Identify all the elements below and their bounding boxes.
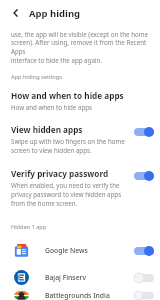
staticText: interface to hide the app again.: [11, 56, 102, 64]
button[interactable]: How and when to hide apps: [0, 88, 160, 113]
button[interactable]: Google News: [0, 237, 160, 264]
button[interactable]: Toggle on: [134, 246, 154, 256]
staticText: Verify privacy password: [11, 168, 109, 179]
staticText: Google News: [45, 246, 134, 255]
button[interactable]: Toggle off: [134, 291, 154, 300]
staticText: App hiding: [29, 7, 81, 20]
button[interactable]: Toggle off: [134, 273, 154, 283]
staticText: Bajaj Finserv: [45, 273, 134, 282]
button[interactable]: Toggle on: [134, 171, 154, 181]
staticText: App hiding settings: [11, 73, 62, 81]
staticText: When enabled, you need to verify the pri…: [11, 181, 122, 208]
staticText: View hidden apps: [11, 124, 83, 135]
staticText: Swipe up with two fingers on the home sc…: [11, 137, 125, 155]
button[interactable]: Verify privacy password: [0, 166, 160, 210]
button[interactable]: Bajaj Finserv: [0, 264, 160, 291]
button[interactable]: Battlegrounds India: [0, 291, 160, 300]
button[interactable]: Back: [8, 5, 24, 21]
staticText: screen). After using, remove it from the…: [11, 38, 152, 56]
button[interactable]: View hidden apps: [0, 122, 160, 157]
button[interactable]: Toggle on: [134, 127, 154, 137]
staticText: use, the app will be visible (except on …: [11, 30, 149, 38]
staticText: Battlegrounds India: [45, 291, 134, 300]
staticText: How and when to hide apps: [11, 90, 124, 101]
staticText: How and when to hide apps: [11, 103, 92, 111]
staticText: Hidden 1 app: [11, 223, 47, 231]
